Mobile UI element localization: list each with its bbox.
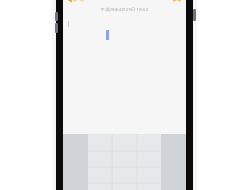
button[interactable]: Power <box>193 9 196 21</box>
button[interactable]: Message text field <box>63 14 186 134</box>
staticText: 平成28年4月29日 18:52 <box>63 7 186 13</box>
button[interactable]: Volume down <box>55 23 58 33</box>
button[interactable]: Volume up <box>55 12 58 21</box>
